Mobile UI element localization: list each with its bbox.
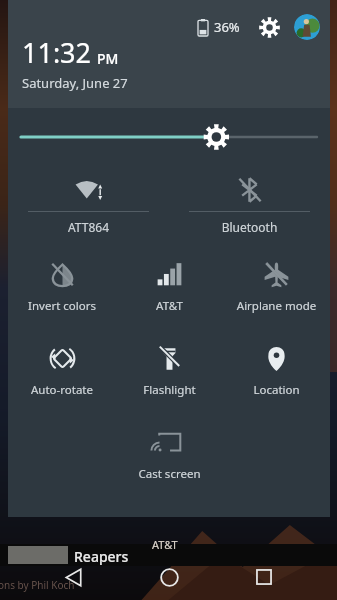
button[interactable]: Invert colors <box>8 244 116 328</box>
button[interactable]: Auto-rotate <box>8 328 116 412</box>
staticText: Airplane mode <box>223 298 330 314</box>
button[interactable]: Cast screen <box>116 412 223 496</box>
button[interactable]: Settings <box>256 14 282 40</box>
button[interactable]: Home <box>146 554 192 600</box>
staticText: 36% <box>214 18 240 36</box>
staticText: Cast screen <box>116 466 223 482</box>
button[interactable]: User profile <box>294 14 320 40</box>
staticText: Invert colors <box>8 298 116 314</box>
button[interactable]: Location <box>223 328 330 412</box>
button[interactable]: Bluetooth <box>169 166 330 244</box>
staticText: Flashlight <box>116 382 223 398</box>
button[interactable]: Brightness <box>8 108 330 166</box>
staticText: Auto-rotate <box>8 382 116 398</box>
staticText: Bluetooth <box>189 219 310 235</box>
staticText: Reapers <box>74 547 129 566</box>
staticText: ons by Phil Koch <box>0 578 75 592</box>
staticText: Saturday, June 27 <box>22 74 128 92</box>
other: Battery 36 percent <box>198 19 208 36</box>
button[interactable]: Back <box>50 554 96 600</box>
staticText: AT&T <box>116 298 223 314</box>
button[interactable]: ATT864 <box>8 166 169 244</box>
button[interactable]: Airplane mode <box>223 244 330 328</box>
staticText: ATT864 <box>28 219 149 235</box>
staticText: AT&T <box>152 537 178 552</box>
button[interactable]: Recent apps <box>241 554 287 600</box>
button[interactable]: Flashlight <box>116 328 223 412</box>
button[interactable]: AT&T <box>116 244 223 328</box>
staticText: Location <box>223 382 330 398</box>
staticText: PM <box>97 49 119 68</box>
staticText: 11:32 <box>22 34 92 71</box>
